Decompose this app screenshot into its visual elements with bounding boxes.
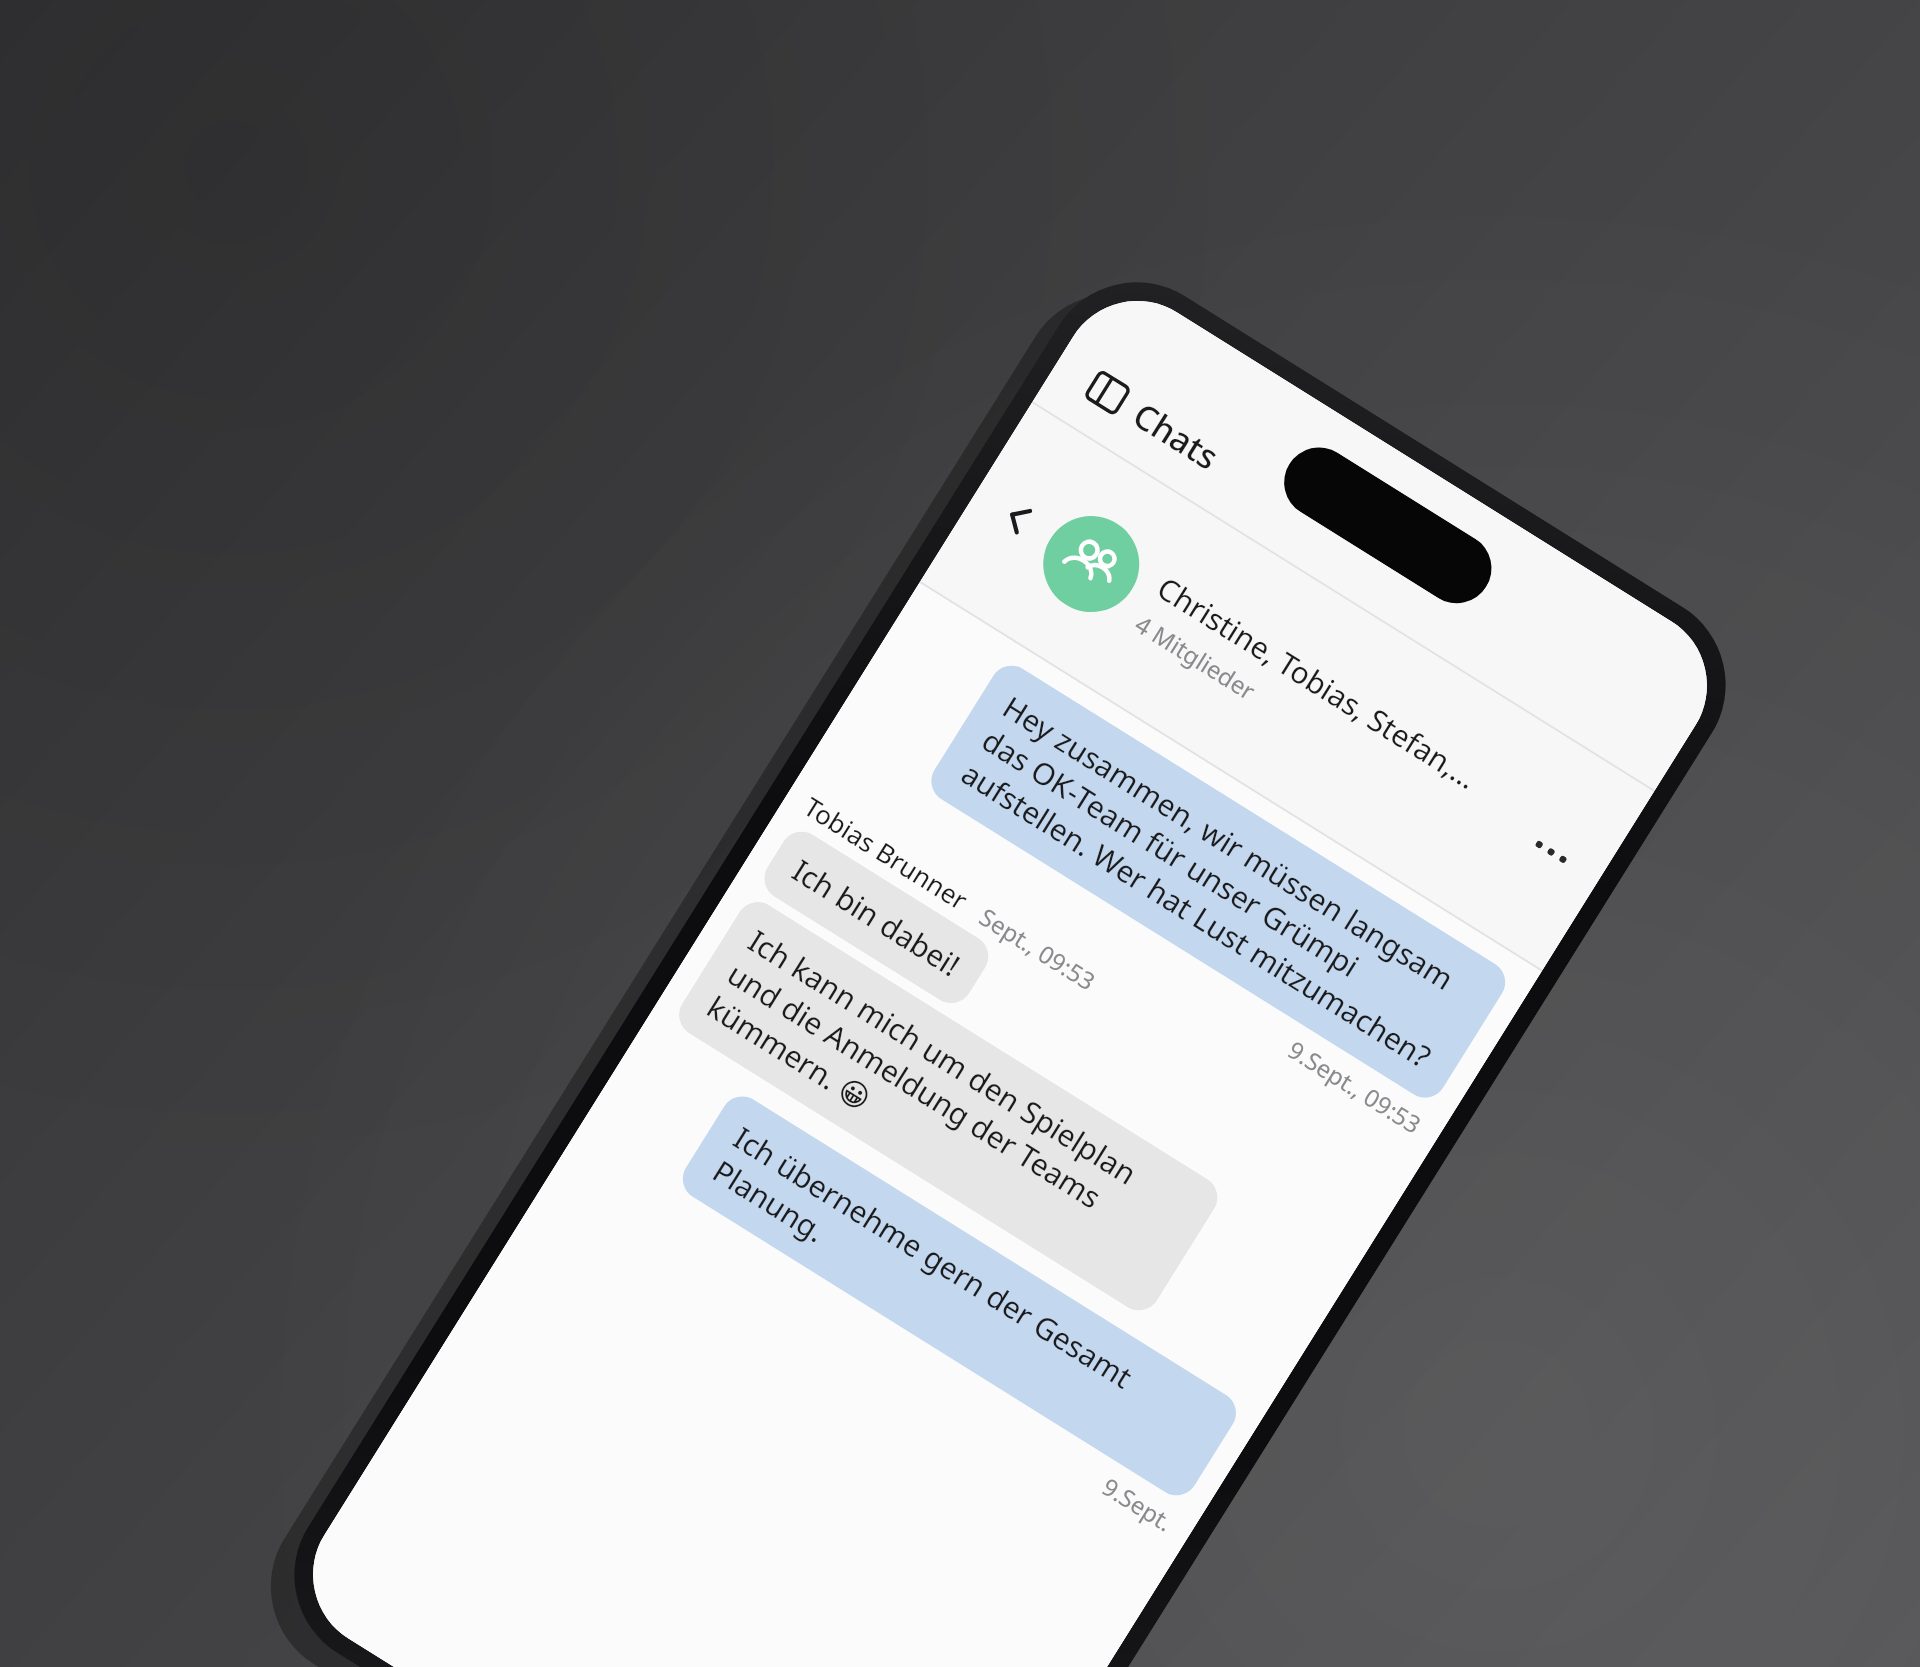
button[interactable]: Ich übernehme gern der Gesamt Planung. xyxy=(674,1088,1244,1504)
button[interactable]: Group avatar xyxy=(1025,498,1157,630)
staticText: Chats xyxy=(1125,392,1227,479)
staticText: Ich kann mich um den Spielplan und die A… xyxy=(700,920,1197,1292)
staticText: Christine, Tobias, Stefan,… xyxy=(1150,567,1486,798)
other: Sidebar xyxy=(1081,366,1134,419)
button[interactable]: Back xyxy=(980,480,1057,557)
staticText: 9.Sept. xyxy=(1096,1470,1179,1538)
button[interactable]: Sidebar xyxy=(1071,355,1236,488)
staticText: Ich übernehme gern der Gesamt Planung. xyxy=(706,1117,1213,1475)
button[interactable]: Hey zusammen, wir müssen langsam das OK-… xyxy=(923,657,1513,1106)
staticText: Hey zusammen, wir müssen langsam das OK-… xyxy=(955,686,1482,1077)
button[interactable]: More options xyxy=(1507,807,1595,895)
staticText: Sept., 09:53 xyxy=(973,900,1102,997)
staticText: 4 Mitglieder xyxy=(1129,607,1262,707)
staticText: Ich bin dabei! xyxy=(785,850,968,985)
staticText: 9.Sept., 09:53 xyxy=(1282,1033,1428,1141)
staticText: Tobias Brunner xyxy=(798,789,975,917)
button[interactable]: Ich kann mich um den Spielplan und die A… xyxy=(671,894,1226,1319)
button[interactable]: Ich bin dabei! xyxy=(756,823,997,1011)
